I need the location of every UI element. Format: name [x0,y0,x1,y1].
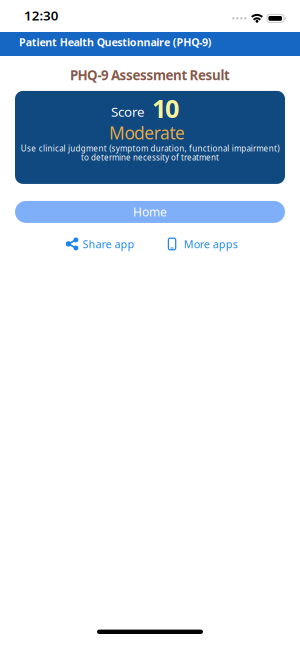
staticText: Share app [82,237,134,251]
button[interactable]: Share app [65,237,134,251]
staticText: More apps [184,237,238,251]
button[interactable]: More apps [168,237,238,251]
staticText: PHQ-9 Assessment Result [70,66,230,84]
staticText: 10 [152,91,179,125]
staticText: Moderate [109,121,185,144]
staticText: Home [133,204,167,220]
staticText: 12:30 [24,6,59,24]
staticText: Patient Health Questionnaire (PHQ-9) [19,35,212,49]
staticText: to determine necessity of treatment [81,152,219,163]
staticText: Score [111,103,145,120]
staticText: Use clinical judgment (symptom duration,… [21,143,279,154]
button[interactable]: Home [15,201,285,223]
